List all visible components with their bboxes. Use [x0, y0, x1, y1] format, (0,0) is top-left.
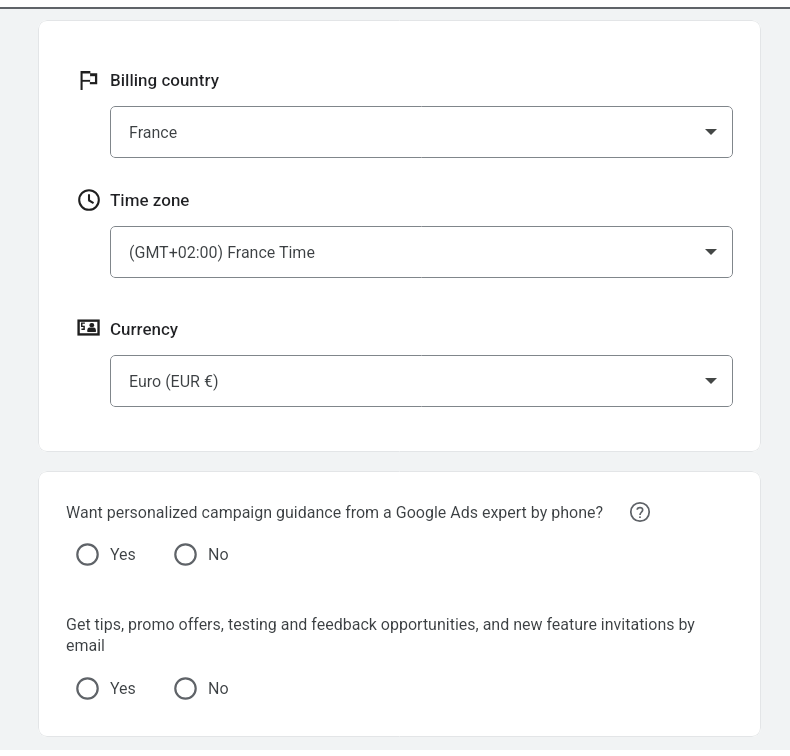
staticText: Yes: [110, 545, 136, 564]
staticText: Want personalized campaign guidance from…: [66, 503, 604, 522]
staticText: Currency: [110, 319, 179, 339]
staticText: No: [208, 545, 229, 564]
button[interactable]: Help: [629, 501, 651, 523]
button[interactable]: (GMT+02:00) France Time: [110, 226, 733, 278]
staticText: Get tips, promo offers, testing and feed…: [66, 615, 733, 655]
staticText: France: [129, 123, 178, 142]
button[interactable]: Euro (EUR €): [110, 355, 733, 407]
button[interactable]: France: [110, 106, 733, 158]
button[interactable]: No: [174, 543, 229, 566]
button[interactable]: No: [174, 677, 229, 700]
staticText: Euro (EUR €): [129, 372, 219, 391]
staticText: (GMT+02:00) France Time: [129, 243, 315, 262]
staticText: Billing country: [110, 70, 219, 90]
staticText: Yes: [110, 679, 136, 698]
button[interactable]: Yes: [76, 677, 136, 700]
staticText: Time zone: [110, 190, 190, 210]
staticText: No: [208, 679, 229, 698]
button[interactable]: Yes: [76, 543, 136, 566]
